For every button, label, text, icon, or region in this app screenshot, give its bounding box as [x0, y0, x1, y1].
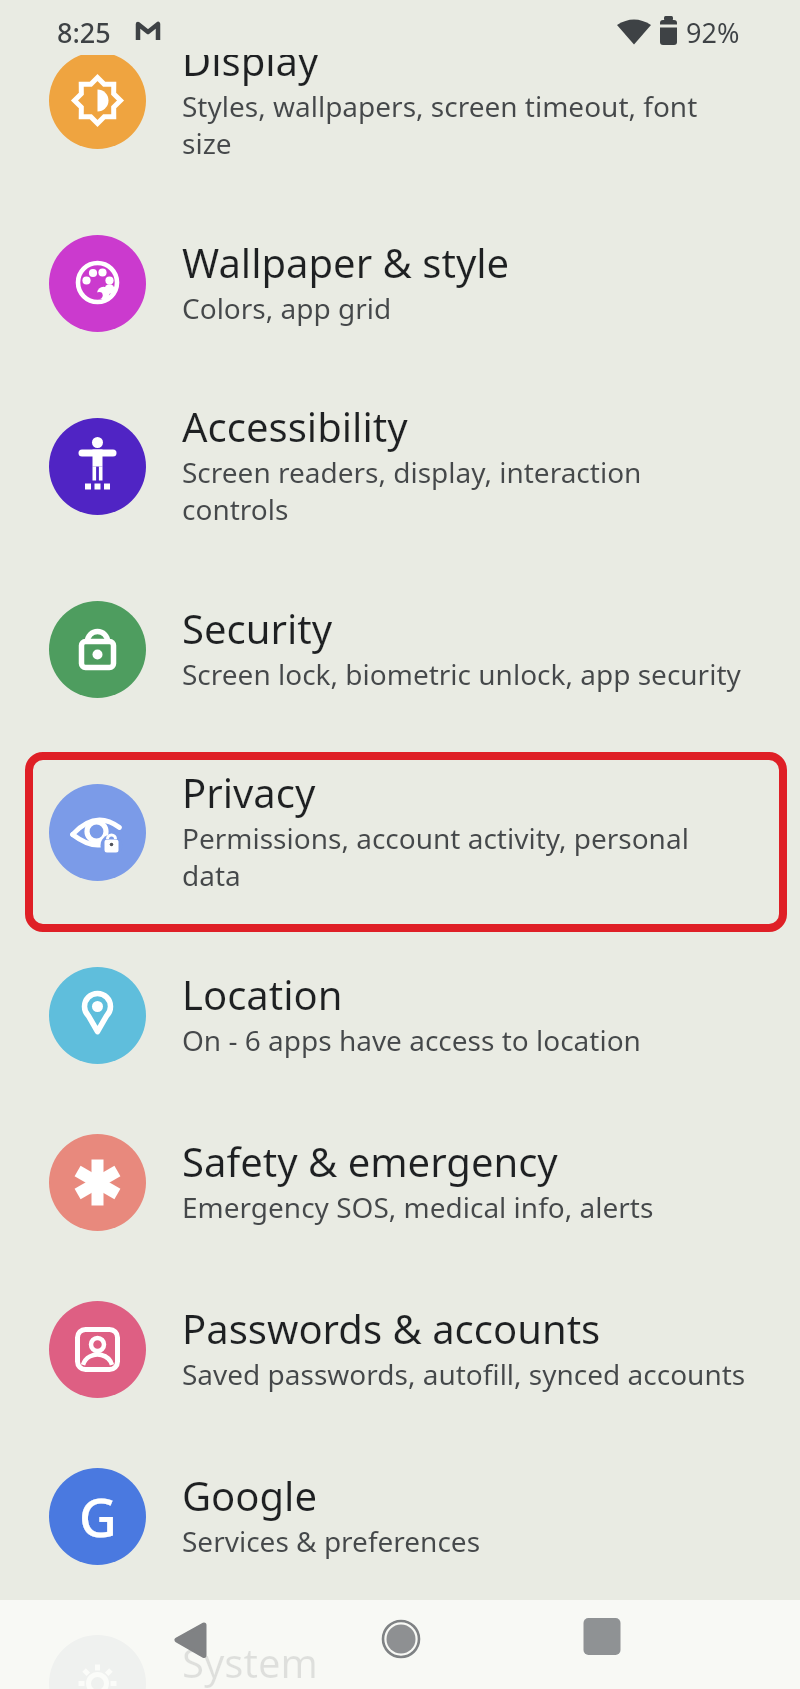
- staticText: Permissions, account activity, personal …: [182, 819, 689, 894]
- staticText: Passwords & accounts: [182, 1301, 601, 1355]
- button[interactable]: Display: [0, 33, 800, 162]
- staticText: Emergency SOS, medical info, alerts: [182, 1188, 654, 1226]
- button[interactable]: Security: [0, 598, 800, 695]
- staticText: On - 6 apps have access to location: [182, 1021, 641, 1059]
- button[interactable]: Privacy: [0, 765, 800, 894]
- button[interactable]: Safety & emergency: [0, 1131, 800, 1228]
- button[interactable]: Location: [0, 964, 800, 1061]
- button[interactable]: G: [0, 1465, 800, 1562]
- button[interactable]: [168, 1614, 216, 1662]
- button[interactable]: [377, 1615, 425, 1663]
- button[interactable]: System: [0, 1632, 800, 1689]
- staticText: Screen readers, display, interaction con…: [182, 453, 642, 528]
- staticText: Colors, app grid: [182, 289, 392, 327]
- button[interactable]: [578, 1613, 626, 1661]
- staticText: Safety & emergency: [182, 1134, 558, 1188]
- staticText: 8:25: [57, 14, 111, 51]
- staticText: Wallpaper & style: [182, 235, 510, 289]
- staticText: Security: [182, 601, 333, 655]
- staticText: Location: [182, 967, 343, 1021]
- staticText: 92%: [686, 14, 740, 51]
- staticText: Screen lock, biometric unlock, app secur…: [182, 655, 741, 693]
- button[interactable]: Accessibility: [0, 399, 800, 528]
- staticText: G: [79, 1481, 117, 1552]
- button[interactable]: Passwords & accounts: [0, 1298, 800, 1395]
- staticText: Saved passwords, autofill, synced accoun…: [182, 1355, 746, 1393]
- staticText: Services & preferences: [182, 1522, 481, 1560]
- staticText: Display: [182, 33, 319, 87]
- staticText: Styles, wallpapers, screen timeout, font…: [182, 87, 698, 162]
- staticText: Accessibility: [182, 399, 408, 453]
- button[interactable]: Wallpaper & style: [0, 232, 800, 329]
- staticText: Privacy: [182, 765, 316, 819]
- staticText: System: [182, 1635, 318, 1689]
- staticText: Google: [182, 1468, 317, 1522]
